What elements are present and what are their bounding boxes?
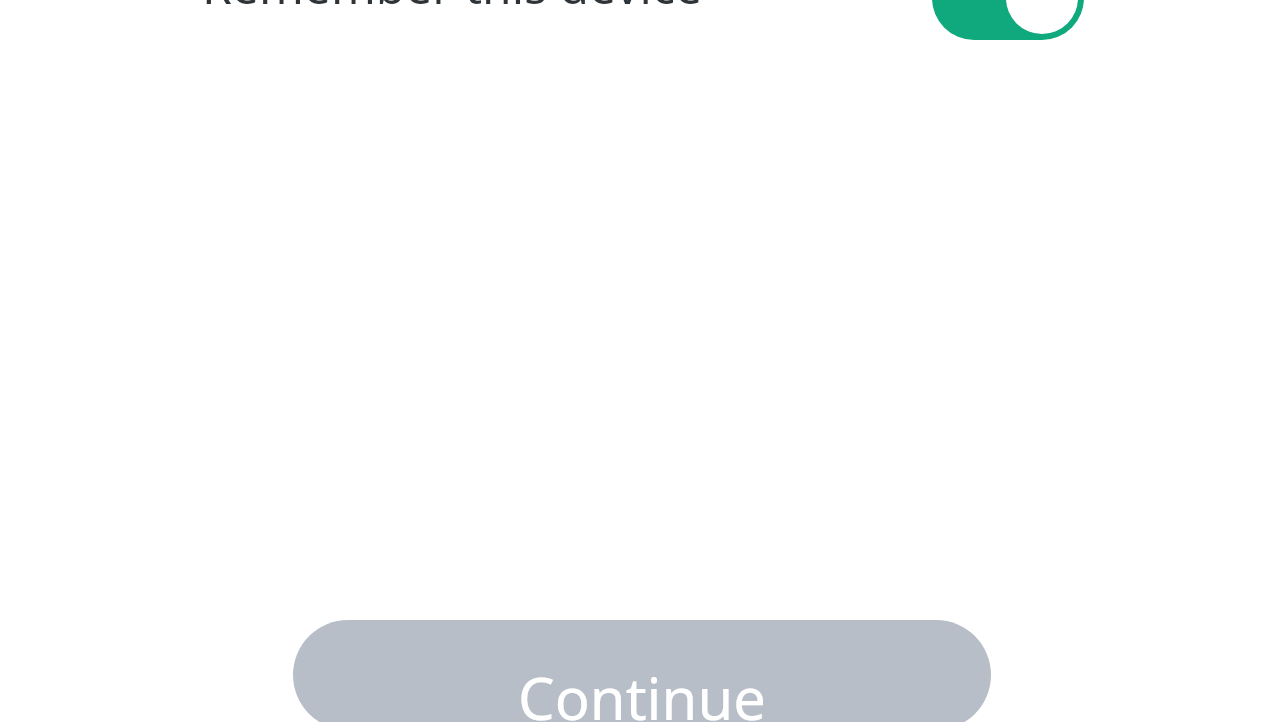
other: Remember this device toggle, on <box>932 0 1084 40</box>
button[interactable]: Continue <box>293 620 991 722</box>
staticText: Continue <box>518 658 766 722</box>
staticText: Remember this device <box>202 0 703 18</box>
button[interactable]: Remember this device <box>0 0 1284 40</box>
